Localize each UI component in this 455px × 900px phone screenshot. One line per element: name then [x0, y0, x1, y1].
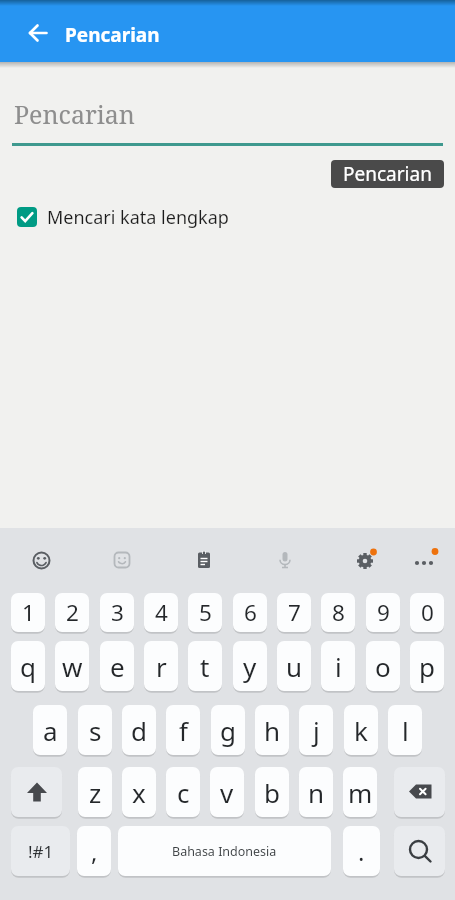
button[interactable] [394, 826, 445, 876]
staticText: w [62, 649, 83, 684]
button[interactable]: y [233, 641, 267, 691]
button[interactable]: g [211, 705, 245, 755]
button[interactable] [265, 540, 305, 580]
staticText: h [264, 713, 281, 748]
staticText: Pencarian [343, 161, 432, 187]
staticText: s [89, 713, 102, 748]
staticText: m [348, 775, 373, 810]
button[interactable]: b [255, 767, 289, 817]
staticText: , [91, 835, 98, 868]
staticText: l [402, 713, 409, 748]
button[interactable]: !#1 [11, 826, 70, 876]
button[interactable]: 6 [233, 593, 267, 632]
staticText: 8 [332, 597, 345, 628]
staticText: 1 [22, 597, 35, 628]
button[interactable]: Mencari kata lengkap [10, 200, 455, 236]
staticText: Pencarian [65, 22, 160, 48]
button[interactable]: r [144, 641, 178, 691]
staticText: 2 [66, 597, 79, 628]
button[interactable] [347, 540, 387, 580]
staticText: d [131, 713, 147, 748]
button[interactable] [21, 540, 61, 580]
button[interactable]: 0 [410, 593, 444, 632]
staticText: a [43, 713, 58, 748]
button[interactable]: o [366, 641, 400, 691]
button[interactable]: k [344, 705, 378, 755]
button[interactable]: 8 [321, 593, 355, 632]
staticText: 7 [288, 597, 301, 628]
staticText: z [89, 775, 102, 810]
button[interactable] [394, 767, 445, 817]
button[interactable]: Bahasa Indonesia [118, 826, 331, 876]
button[interactable]: v [210, 767, 244, 817]
staticText: r [156, 649, 167, 684]
button[interactable]: j [299, 705, 333, 755]
staticText: t [200, 649, 210, 684]
button[interactable] [11, 767, 62, 817]
staticText: c [177, 775, 190, 810]
button[interactable]: f [166, 705, 200, 755]
button[interactable]: Pencarian [331, 160, 444, 188]
button[interactable] [102, 540, 142, 580]
staticText: v [220, 775, 234, 810]
staticText: g [220, 713, 236, 748]
button[interactable]: a [33, 705, 67, 755]
button[interactable]: i [321, 641, 355, 691]
button[interactable] [184, 540, 224, 580]
button[interactable]: e [100, 641, 134, 691]
button[interactable]: d [122, 705, 156, 755]
staticText: b [264, 775, 280, 810]
staticText: f [179, 713, 188, 748]
button[interactable]: n [299, 767, 333, 817]
button[interactable]: l [388, 705, 422, 755]
staticText: y [243, 649, 257, 684]
button[interactable]: 7 [277, 593, 311, 632]
button[interactable] [26, 21, 50, 45]
staticText: 5 [199, 597, 212, 628]
button[interactable]: 3 [100, 593, 134, 632]
button[interactable]: c [166, 767, 200, 817]
button[interactable]: p [410, 641, 444, 691]
staticText: 0 [421, 597, 434, 628]
staticText: 6 [244, 597, 257, 628]
button[interactable]: h [255, 705, 289, 755]
staticText: Mencari kata lengkap [47, 205, 229, 230]
button[interactable]: t [188, 641, 222, 691]
button[interactable]: 4 [144, 593, 178, 632]
staticText: p [419, 649, 435, 684]
button[interactable]: q [11, 641, 45, 691]
staticText: 4 [155, 597, 168, 628]
button[interactable]: 9 [366, 593, 400, 632]
staticText: o [375, 649, 391, 684]
button[interactable] [404, 540, 444, 580]
button[interactable]: 2 [55, 593, 89, 632]
button[interactable]: . [343, 826, 380, 876]
staticText: Bahasa Indonesia [172, 843, 277, 860]
staticText: x [132, 775, 146, 810]
staticText: 9 [377, 597, 390, 628]
staticText: i [335, 649, 342, 684]
button[interactable]: 5 [188, 593, 222, 632]
button[interactable]: w [55, 641, 89, 691]
button[interactable]: s [78, 705, 112, 755]
staticText: q [20, 649, 36, 684]
button[interactable]: u [277, 641, 311, 691]
button[interactable]: m [343, 767, 377, 817]
staticText: e [110, 649, 125, 684]
staticText: Pencarian [14, 97, 135, 131]
staticText: n [308, 775, 325, 810]
button[interactable]: z [78, 767, 112, 817]
staticText: j [313, 713, 320, 748]
staticText: . [358, 835, 365, 868]
button[interactable]: x [122, 767, 156, 817]
staticText: u [286, 649, 303, 684]
button[interactable]: , [77, 826, 111, 876]
button[interactable]: Pencarian [12, 88, 443, 145]
button[interactable]: 1 [11, 593, 45, 632]
staticText: k [354, 713, 368, 748]
staticText: 3 [111, 597, 124, 628]
staticText: !#1 [28, 840, 54, 863]
